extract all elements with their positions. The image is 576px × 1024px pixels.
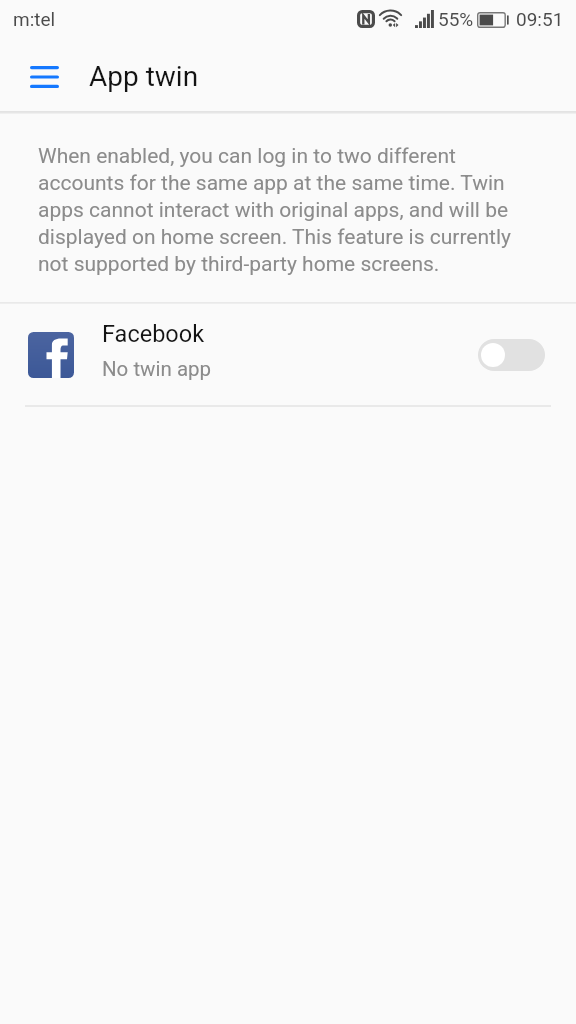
staticText: m:tel <box>13 8 56 30</box>
button[interactable]: Twin app toggle, off <box>478 339 545 371</box>
staticText: 55% <box>438 8 474 30</box>
staticText: 09:51 <box>516 8 564 30</box>
button[interactable]: Facebook <box>0 304 576 406</box>
staticText: When enabled, you can log in to two diff… <box>38 142 520 277</box>
staticText: App twin <box>89 60 199 93</box>
staticText: No twin app <box>102 357 212 381</box>
staticText: Facebook <box>102 320 205 348</box>
button[interactable]: Open navigation menu <box>13 45 76 108</box>
